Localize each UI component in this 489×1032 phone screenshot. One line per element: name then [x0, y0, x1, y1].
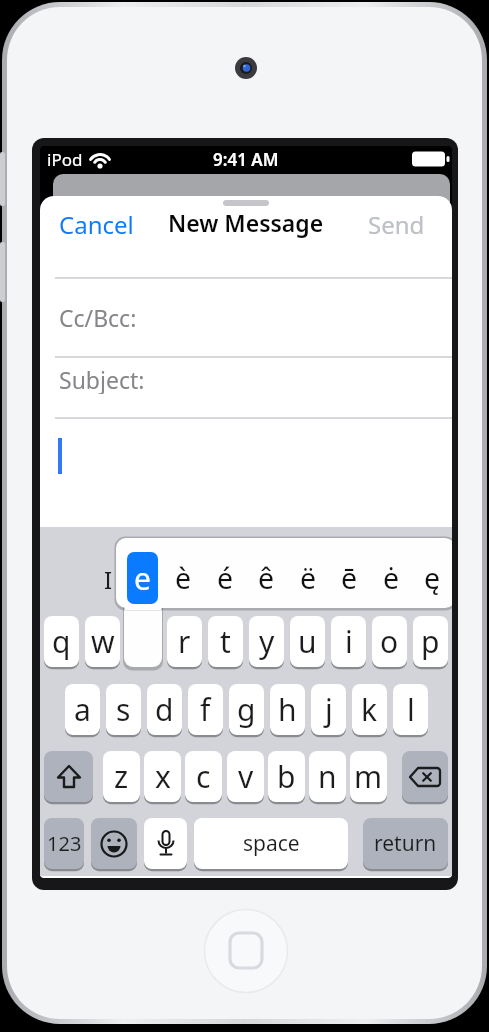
button[interactable]: c — [185, 751, 222, 802]
staticText: j — [325, 689, 333, 730]
staticText: w — [91, 621, 115, 662]
staticText: New Message — [168, 207, 324, 238]
staticText: p — [421, 621, 440, 662]
staticText: é — [217, 559, 234, 598]
staticText: o — [380, 621, 399, 662]
button[interactable] — [116, 538, 452, 608]
staticText: ē — [341, 559, 358, 598]
staticText: I — [104, 563, 113, 593]
button[interactable]: o — [372, 616, 407, 667]
button[interactable]: b — [268, 751, 305, 802]
button[interactable] — [204, 909, 288, 993]
button[interactable]: m — [350, 751, 387, 802]
button[interactable]: p — [413, 616, 448, 667]
staticText: ë — [300, 559, 317, 598]
button[interactable]: 123 — [44, 818, 84, 869]
staticText: n — [318, 756, 337, 797]
button[interactable]: y — [249, 616, 284, 667]
button[interactable] — [40, 278, 452, 356]
button[interactable]: return — [363, 818, 448, 869]
staticText: e — [134, 558, 151, 599]
staticText: Cc/Bcc: — [59, 302, 137, 332]
button[interactable]: g — [229, 684, 264, 735]
staticText: d — [155, 689, 174, 730]
staticText: c — [196, 756, 211, 797]
button[interactable] — [91, 818, 137, 869]
button[interactable]: Send — [345, 208, 425, 236]
button[interactable]: x — [144, 751, 181, 802]
button[interactable]: z — [103, 751, 140, 802]
button[interactable]: d — [147, 684, 182, 735]
button[interactable] — [40, 357, 452, 417]
button[interactable]: j — [311, 684, 346, 735]
button[interactable] — [402, 751, 448, 802]
staticText: è — [175, 559, 192, 598]
button[interactable]: r — [167, 616, 202, 667]
staticText: g — [237, 689, 256, 730]
button[interactable]: a — [65, 684, 100, 735]
button[interactable] — [144, 818, 187, 869]
button[interactable]: i — [331, 616, 366, 667]
staticText: q — [52, 621, 71, 662]
button[interactable]: k — [352, 684, 387, 735]
button[interactable]: e — [127, 552, 158, 604]
staticText: k — [361, 689, 378, 730]
button[interactable]: Cancel — [59, 208, 149, 236]
staticText: ė — [383, 559, 400, 598]
staticText: a — [74, 689, 91, 730]
staticText: 9:41 AM — [213, 148, 279, 171]
button[interactable]: u — [290, 616, 325, 667]
button[interactable]: f — [188, 684, 223, 735]
staticText: ê — [258, 559, 275, 598]
staticText: Cancel — [59, 208, 134, 236]
staticText: Subject: — [59, 364, 145, 394]
button[interactable]: n — [309, 751, 346, 802]
staticText: f — [200, 689, 211, 730]
staticText: return — [374, 829, 437, 858]
staticText: b — [277, 756, 296, 797]
button[interactable]: v — [227, 751, 264, 802]
staticText: x — [155, 756, 171, 797]
button[interactable] — [40, 236, 452, 277]
button[interactable]: space — [194, 818, 348, 869]
staticText: ę — [424, 559, 441, 598]
staticText: y — [259, 621, 275, 662]
staticText: space — [243, 829, 300, 858]
button[interactable] — [40, 418, 452, 527]
staticText: t — [220, 621, 231, 662]
staticText: iPod — [47, 148, 83, 171]
staticText: i — [345, 621, 353, 662]
staticText: r — [178, 621, 191, 662]
button[interactable]: l — [393, 684, 428, 735]
button[interactable]: w — [85, 616, 120, 667]
staticText: l — [407, 689, 415, 730]
button[interactable]: s — [106, 684, 141, 735]
staticText: z — [114, 756, 129, 797]
staticText: v — [238, 756, 254, 797]
staticText: u — [298, 621, 317, 662]
staticText: Send — [368, 208, 425, 236]
button[interactable] — [44, 751, 93, 802]
staticText: s — [116, 689, 131, 730]
staticText: h — [278, 689, 297, 730]
button[interactable]: h — [270, 684, 305, 735]
staticText: 123 — [47, 830, 82, 857]
button[interactable]: t — [208, 616, 243, 667]
button[interactable]: q — [44, 616, 79, 667]
staticText: m — [354, 756, 383, 797]
